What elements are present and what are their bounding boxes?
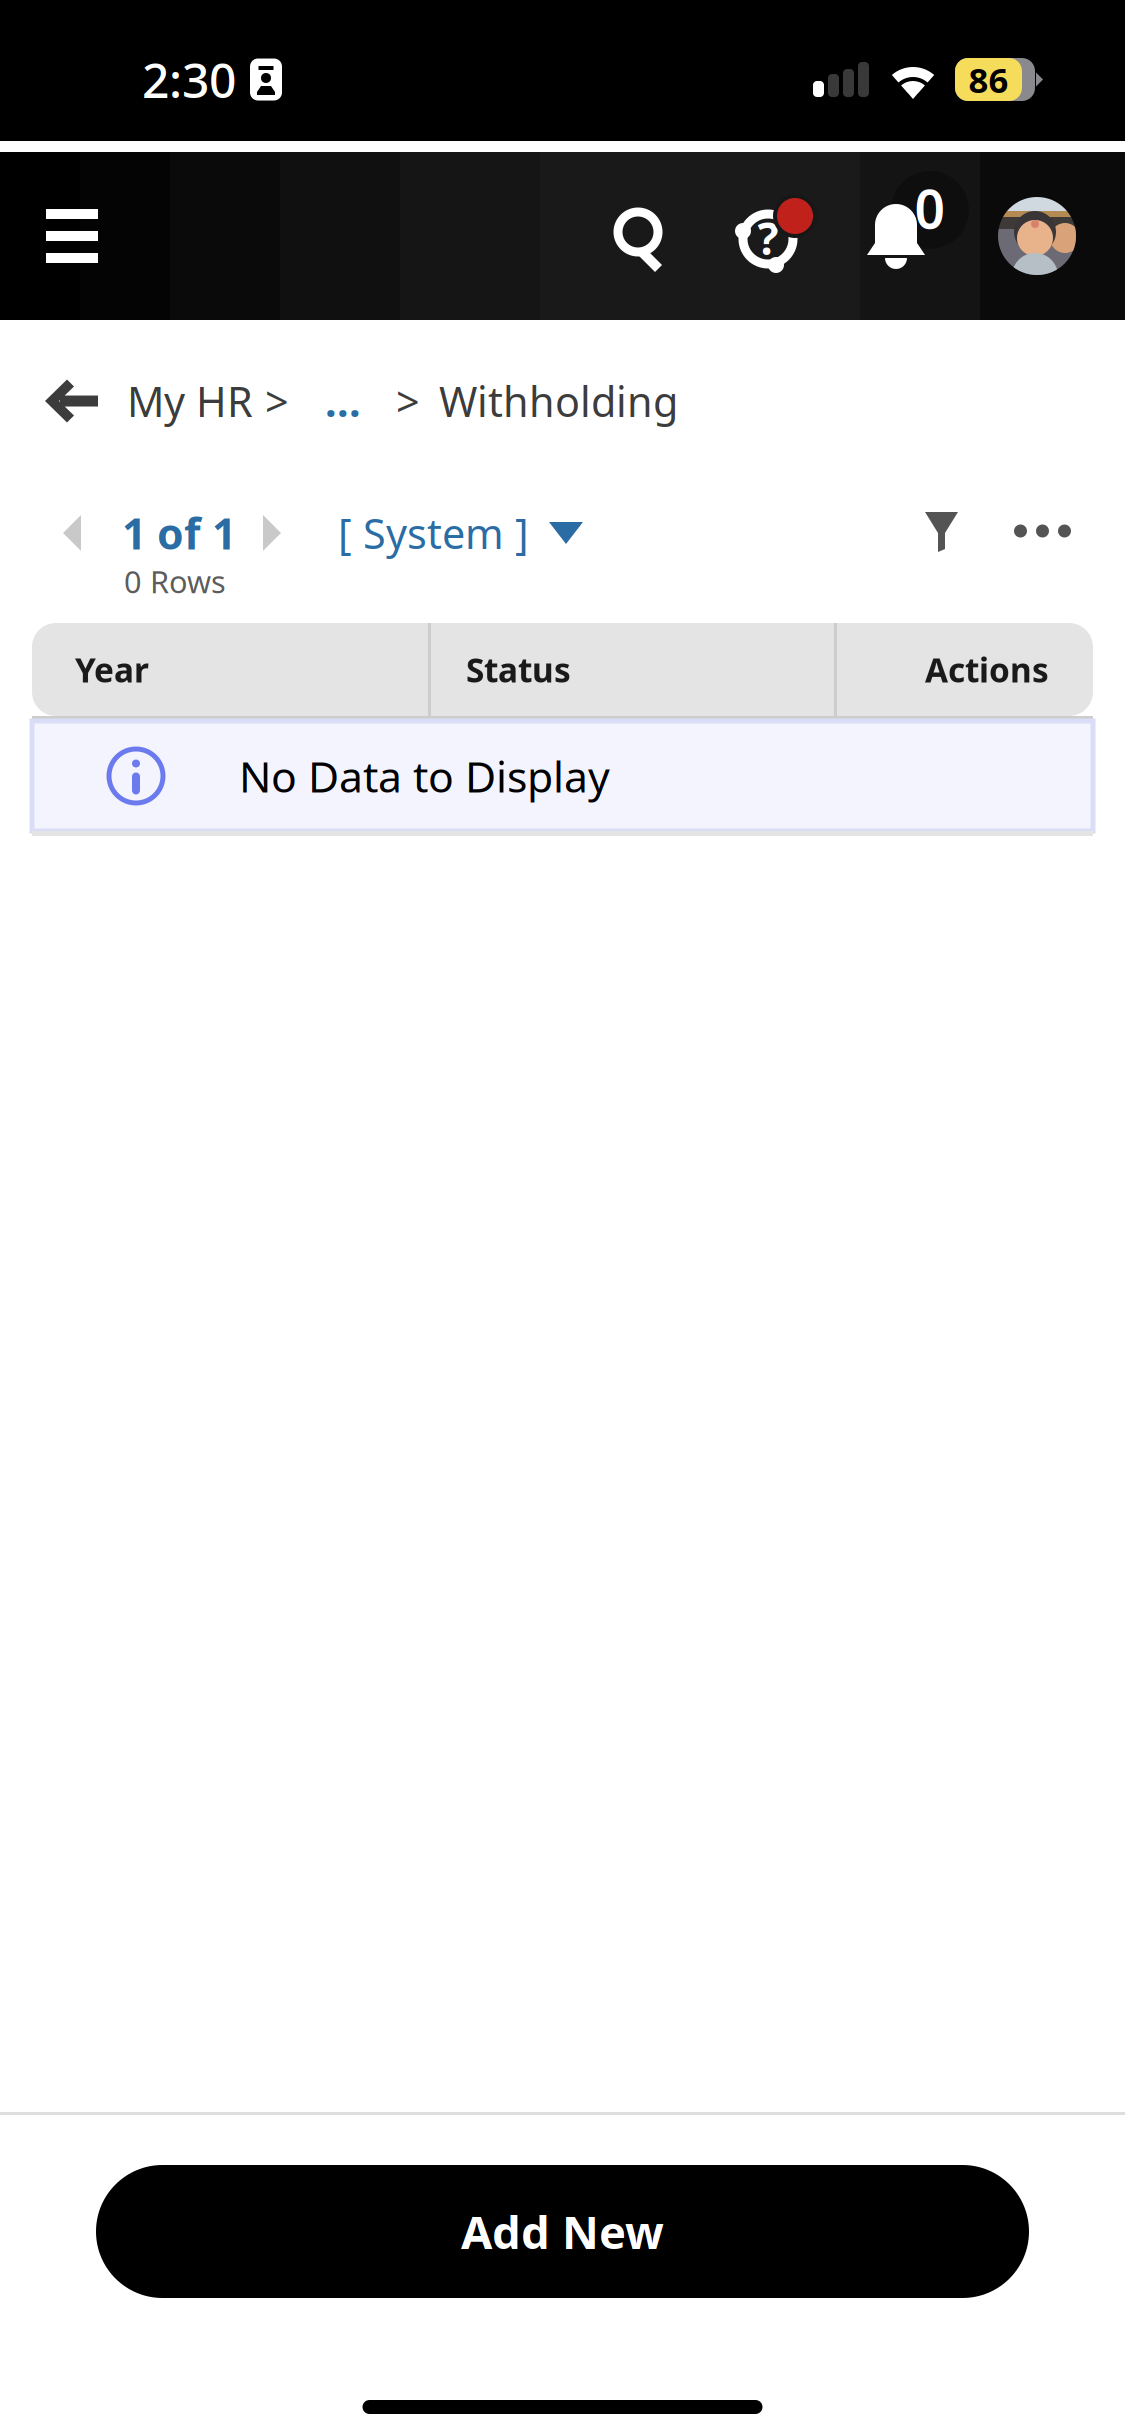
- button[interactable]: More options: [972, 487, 1125, 575]
- staticText: 0: [914, 173, 945, 243]
- staticText: No Data to Display: [239, 748, 610, 804]
- button[interactable]: Back: [0, 358, 127, 444]
- staticText: 86: [968, 56, 1008, 102]
- staticText: >: [265, 374, 289, 428]
- button[interactable]: Previous page: [0, 501, 122, 565]
- staticText: Year: [75, 647, 149, 692]
- button[interactable]: Notifications: [839, 152, 971, 320]
- button[interactable]: Search: [575, 152, 707, 320]
- staticText: [ System ]: [338, 506, 529, 560]
- staticText: ...: [325, 374, 361, 428]
- staticText: My HR: [127, 374, 253, 428]
- staticText: Add New: [461, 2201, 664, 2262]
- button[interactable]: Add New: [96, 2165, 1029, 2298]
- button[interactable]: ...: [289, 374, 396, 428]
- staticText: ?: [757, 209, 778, 267]
- button[interactable]: Menu: [0, 152, 132, 320]
- staticText: 1 of 1: [122, 505, 236, 561]
- button[interactable]: Filter: [871, 487, 972, 575]
- button[interactable]: Next page: [236, 501, 318, 565]
- staticText: Status: [466, 647, 571, 692]
- button[interactable]: [ System ]: [318, 501, 583, 565]
- staticText: Withholding: [439, 374, 678, 428]
- staticText: 2:30: [142, 48, 236, 111]
- staticText: Actions: [925, 647, 1049, 692]
- button[interactable]: Help: [707, 152, 839, 320]
- staticText: >: [396, 374, 420, 428]
- button[interactable]: My HR: [127, 374, 253, 428]
- staticText: 0 Rows: [124, 561, 226, 602]
- button[interactable]: Profile: [971, 152, 1125, 320]
